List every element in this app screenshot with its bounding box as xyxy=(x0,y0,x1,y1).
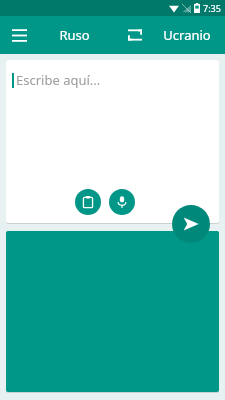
button[interactable]: Voice input xyxy=(109,189,135,215)
staticText: 7:35 xyxy=(203,2,221,14)
button[interactable]: Swap languages xyxy=(120,20,150,50)
staticText: Escribe aquí... xyxy=(16,71,101,89)
button[interactable]: Open navigation menu xyxy=(4,20,34,50)
button[interactable]: Ruso xyxy=(44,20,104,50)
button[interactable]: Ucranio xyxy=(155,20,219,50)
button[interactable]: Escribe aquí... xyxy=(12,69,219,91)
button[interactable]: Send xyxy=(172,205,210,243)
button[interactable]: Paste from clipboard xyxy=(75,189,101,215)
staticText: Ucranio xyxy=(163,26,211,44)
staticText: Ruso xyxy=(59,26,90,44)
